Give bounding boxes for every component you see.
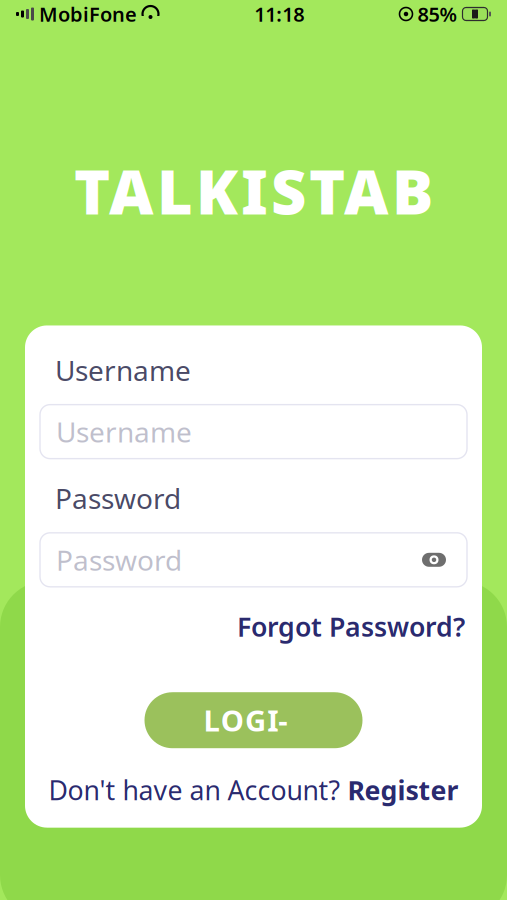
staticText: Register [347,772,458,808]
staticText: 85% [417,1,457,27]
staticText: Password [56,541,182,578]
button[interactable]: Don't have an Account? [40,768,467,812]
staticText: 11:18 [254,1,304,27]
staticText: Username [56,413,192,450]
staticText: LOGIN [204,701,303,740]
staticText: TALKISTAB [74,150,433,231]
staticText: Username [55,351,191,389]
staticText: Don't have an Account? [48,772,347,808]
staticText: MobiFone [39,1,137,27]
button[interactable]: LOGIN [144,692,362,748]
button[interactable]: Forgot Password? [40,605,467,648]
staticText: Forgot Password? [237,609,465,644]
staticText: Password [55,480,181,517]
button[interactable]: Show password [417,543,451,577]
